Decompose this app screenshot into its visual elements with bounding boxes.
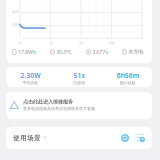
staticText: 51s bbox=[73, 71, 84, 80]
staticText: 平均功耗 bbox=[22, 81, 38, 85]
staticText: 使用场景 bbox=[13, 134, 41, 142]
staticText: 40% bbox=[12, 9, 19, 14]
button[interactable]: 客服 bbox=[121, 134, 129, 142]
staticText: 预计续航 bbox=[120, 81, 136, 85]
staticText: 50 bbox=[79, 40, 83, 45]
staticText: 100 bbox=[108, 40, 114, 45]
staticText: 未充电 bbox=[128, 48, 143, 55]
staticText: 10 bbox=[48, 40, 52, 45]
staticText: 0 bbox=[19, 40, 21, 45]
staticText: 6h56m bbox=[117, 71, 139, 80]
staticText: 30.3℃ bbox=[56, 48, 71, 56]
staticText: 已使用 bbox=[73, 81, 85, 85]
staticText: 3.677v bbox=[92, 48, 108, 56]
button[interactable]: 点击此处进入维修服务 bbox=[6, 92, 152, 119]
staticText: 20% bbox=[12, 22, 19, 27]
staticText: 17.8Wh bbox=[18, 48, 36, 56]
staticText: 点击此处进入维修服务 bbox=[23, 98, 73, 105]
staticText: ? bbox=[44, 135, 46, 141]
staticText: 2.30W bbox=[20, 71, 40, 80]
button[interactable]: 使用记录 bbox=[134, 133, 145, 142]
staticText: 更多电池维修及保养信息请联系官方客服 bbox=[23, 106, 95, 111]
